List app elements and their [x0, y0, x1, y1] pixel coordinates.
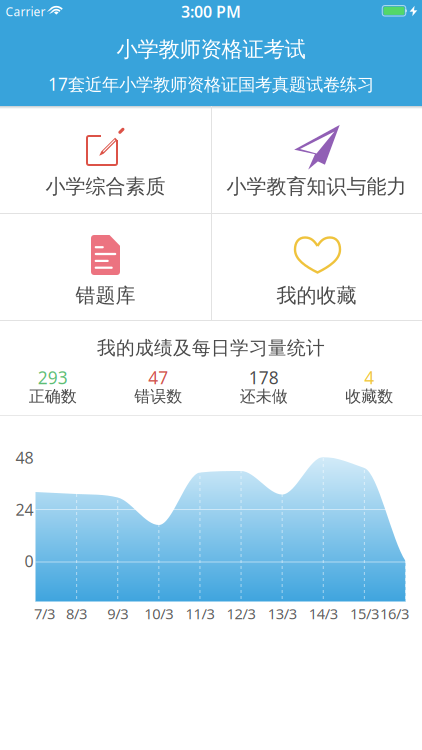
- staticText: 小学教师资格证考试: [116, 36, 305, 63]
- staticText: 16/3: [380, 604, 409, 623]
- staticText: 收藏数: [345, 387, 393, 406]
- staticText: Carrier: [5, 3, 45, 19]
- staticText: 7/3: [34, 604, 55, 623]
- staticText: 3:00 PM: [181, 1, 241, 22]
- staticText: 4: [364, 366, 374, 389]
- staticText: 17套近年小学教师资格证国考真题试卷练习: [48, 72, 374, 95]
- staticText: 10/3: [144, 604, 173, 623]
- button[interactable]: 小学教育知识与能力: [211, 106, 422, 213]
- staticText: 48: [15, 447, 33, 468]
- staticText: 正确数: [29, 387, 77, 406]
- staticText: 178: [249, 366, 279, 389]
- staticText: 13/3: [268, 604, 297, 623]
- staticText: 8/3: [66, 604, 87, 623]
- staticText: 0: [24, 550, 33, 572]
- staticText: 我的收藏: [276, 283, 356, 308]
- button[interactable]: 小学综合素质: [0, 106, 211, 213]
- staticText: 9/3: [107, 604, 128, 623]
- button[interactable]: 我的收藏: [211, 213, 422, 320]
- staticText: 12/3: [227, 604, 256, 623]
- button[interactable]: 错题库: [0, 213, 211, 320]
- staticText: 24: [15, 499, 33, 520]
- staticText: 错误数: [134, 387, 182, 406]
- staticText: 47: [148, 366, 168, 389]
- staticText: 11/3: [185, 604, 214, 623]
- staticText: 293: [38, 366, 68, 389]
- staticText: 我的成绩及每日学习量统计: [97, 336, 325, 359]
- staticText: 14/3: [309, 604, 338, 623]
- staticText: 小学综合素质: [45, 174, 165, 199]
- staticText: 错题库: [75, 283, 135, 308]
- staticText: 小学教育知识与能力: [226, 174, 406, 199]
- staticText: 还未做: [240, 387, 288, 406]
- staticText: 15/3: [350, 604, 379, 623]
